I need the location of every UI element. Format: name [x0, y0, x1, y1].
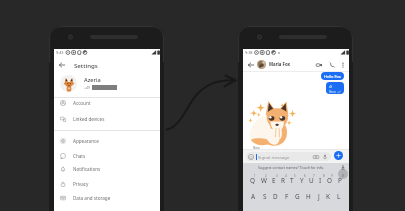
button[interactable]: Hello Fox	[321, 72, 344, 80]
staticText: Hello Fox	[324, 74, 341, 79]
staticText: 0	[342, 174, 344, 178]
button[interactable]: A	[251, 191, 256, 200]
staticText: Chats	[73, 153, 86, 159]
staticText: F	[285, 192, 289, 201]
staticText: Linked devices	[73, 116, 105, 122]
staticText: 9	[331, 174, 333, 178]
staticText: J	[318, 192, 320, 201]
button[interactable]: Camera	[312, 153, 319, 160]
button[interactable]: O	[327, 175, 332, 184]
button[interactable]: Video call	[313, 59, 324, 70]
staticText: Y	[300, 176, 304, 185]
staticText: Notifications	[73, 166, 101, 172]
button[interactable]: S	[263, 191, 267, 200]
button[interactable]: Chats	[54, 149, 160, 163]
staticText: 5	[294, 174, 296, 178]
staticText: L	[337, 192, 341, 201]
button[interactable]: Data and storage	[54, 191, 160, 205]
staticText: D	[273, 192, 278, 201]
button[interactable]: D	[273, 191, 278, 200]
button[interactable]: Back	[246, 60, 255, 69]
staticText: Appearance	[73, 138, 99, 144]
button[interactable]: Privacy	[54, 177, 160, 191]
staticText: R	[281, 176, 285, 185]
button[interactable]: G	[295, 191, 300, 200]
button[interactable]: U	[309, 175, 314, 184]
staticText: 3	[276, 174, 278, 178]
staticText: A	[251, 192, 256, 201]
button[interactable]: Cursor	[338, 169, 348, 179]
button[interactable]: E	[272, 175, 276, 184]
staticText: T	[290, 176, 294, 185]
staticText: +49	[84, 85, 91, 90]
button[interactable]: K	[326, 191, 330, 200]
button[interactable]: J	[318, 191, 320, 200]
staticText: Settings	[74, 61, 98, 69]
button[interactable]: Notifications	[54, 162, 160, 176]
button[interactable]: Back	[54, 58, 69, 71]
button[interactable]: :)	[326, 82, 344, 94]
button[interactable]: Appearance	[54, 134, 160, 148]
staticText: U	[309, 176, 314, 185]
staticText: W	[261, 176, 267, 185]
button[interactable]: I	[319, 175, 322, 184]
staticText: :)	[329, 83, 332, 89]
staticText: O	[327, 176, 332, 185]
button[interactable]: Call	[326, 59, 337, 70]
button[interactable]: H	[306, 191, 311, 200]
button[interactable]: Account	[54, 96, 160, 110]
staticText: S	[263, 192, 267, 201]
staticText: Data and storage	[73, 195, 111, 201]
button[interactable]: Y	[300, 175, 304, 184]
staticText: 4	[285, 174, 287, 178]
staticText: G	[295, 192, 300, 201]
button[interactable]: F	[285, 191, 289, 200]
staticText: Suggest contact names? Touch for info.	[258, 165, 325, 170]
button[interactable]: T	[290, 175, 294, 184]
button[interactable]: Azeria	[54, 72, 160, 94]
button[interactable]: More options	[338, 60, 347, 69]
button[interactable]: Linked devices	[54, 112, 160, 126]
staticText: Azeria	[84, 76, 101, 84]
button[interactable]: W	[261, 175, 267, 184]
button[interactable]: Signal message	[246, 152, 331, 161]
staticText: Maria Fox	[269, 61, 290, 67]
staticText: 9:38	[245, 50, 253, 55]
staticText: 8	[323, 174, 325, 178]
button[interactable]: P	[338, 175, 342, 184]
button[interactable]: Q	[250, 175, 255, 184]
button[interactable]: R	[281, 175, 285, 184]
staticText: Now	[253, 146, 260, 150]
staticText: E	[272, 176, 276, 185]
staticText: Account	[73, 100, 91, 106]
staticText: P	[338, 176, 342, 185]
staticText: K	[326, 192, 330, 201]
staticText: 2	[265, 174, 267, 178]
staticText: 1	[254, 174, 256, 178]
button[interactable]: Voice message	[321, 153, 328, 160]
staticText: Now	[329, 90, 336, 94]
button[interactable]: Add attachment	[334, 151, 343, 160]
staticText: 9:43	[56, 50, 64, 55]
staticText: 6	[304, 174, 306, 178]
staticText: I	[319, 176, 322, 185]
staticText: H	[306, 192, 311, 201]
staticText: Privacy	[73, 181, 89, 187]
staticText: Q	[250, 176, 255, 185]
staticText: 7	[313, 174, 315, 178]
staticText: Signal message	[258, 154, 290, 160]
button[interactable]: L	[337, 191, 341, 200]
